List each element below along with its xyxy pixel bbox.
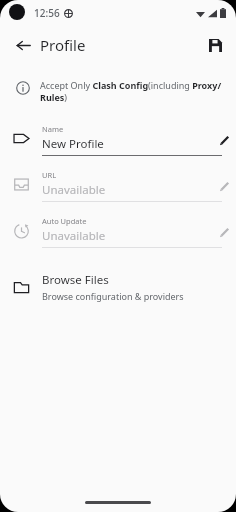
staticText: Auto Update [42, 216, 87, 226]
staticText: Browse Files [42, 272, 109, 288]
button[interactable]: Auto Update [0, 207, 236, 253]
button[interactable]: Browse Files [0, 265, 236, 309]
staticText: Name [42, 124, 64, 134]
staticText: Unavailable [42, 228, 106, 244]
button[interactable]: Name [0, 115, 236, 161]
button[interactable]: Edit Name [212, 128, 236, 152]
button[interactable]: Edit Auto Update [212, 220, 236, 244]
staticText: URL [42, 170, 57, 180]
staticText: Unavailable [42, 182, 106, 198]
staticText: Profile [40, 35, 86, 55]
button[interactable]: Back [9, 31, 37, 59]
staticText: New Profile [42, 136, 104, 152]
button[interactable]: Edit URL [212, 174, 236, 198]
staticText: Browse configuration & providers [42, 290, 184, 302]
button[interactable]: URL [0, 161, 236, 207]
button[interactable]: Save [200, 30, 230, 60]
staticText: Accept Only Clash Config(including Proxy… [40, 79, 222, 104]
staticText: 12:56 [34, 6, 60, 20]
